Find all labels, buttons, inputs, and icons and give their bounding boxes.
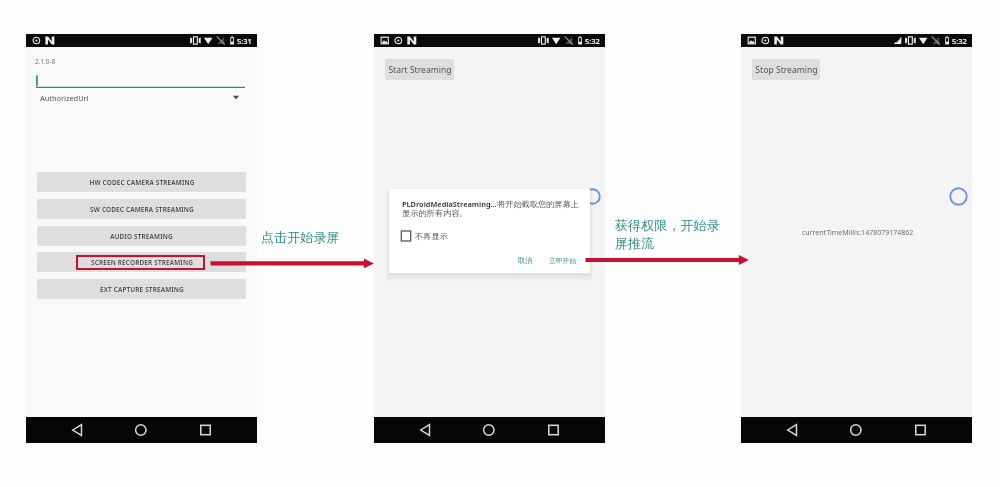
button[interactable]: Recent apps: [194, 417, 216, 443]
button[interactable]: Home: [130, 417, 152, 443]
staticText: HW CODEC CAMERA STREAMING: [89, 178, 195, 187]
staticText: SW CODEC CAMERA STREAMING: [90, 205, 194, 214]
button[interactable]: Home: [478, 417, 500, 443]
staticText: 5:32: [952, 36, 967, 46]
button[interactable]: 立即开始: [545, 254, 581, 267]
staticText: PLDroidMediaStreaming...: [402, 199, 497, 209]
staticText: 5:31: [237, 36, 252, 46]
button[interactable]: Back: [781, 417, 803, 443]
staticText: 显示的所有内容。: [402, 208, 468, 218]
button[interactable]: EXT CAPTURE STREAMING: [37, 279, 246, 299]
staticText: Start Streaming: [388, 64, 452, 76]
staticText: 获得权限，开始录 屏推流: [615, 217, 720, 251]
staticText: SCREEN RECORDER STREAMING: [91, 258, 193, 267]
staticText: Stop Streaming: [755, 64, 818, 76]
button[interactable]: AUDIO STREAMING: [37, 226, 246, 246]
button[interactable]: SW CODEC CAMERA STREAMING: [37, 199, 246, 219]
staticText: 立即开始: [549, 256, 577, 265]
button[interactable]: Start Streaming: [385, 59, 454, 80]
staticText: 5:32: [585, 36, 600, 46]
button[interactable]: Back: [66, 417, 88, 443]
staticText: AUDIO STREAMING: [110, 232, 173, 241]
staticText: EXT CAPTURE STREAMING: [100, 285, 184, 294]
button[interactable]: Recent apps: [909, 417, 931, 443]
button[interactable]: 不再显示: [400, 230, 448, 242]
button[interactable]: Home: [845, 417, 867, 443]
button[interactable]: HW CODEC CAMERA STREAMING: [37, 172, 246, 192]
button[interactable]: Recent apps: [542, 417, 564, 443]
staticText: 取消: [518, 256, 533, 265]
staticText: AuthorizedUrl: [40, 93, 89, 103]
button[interactable]: Back: [414, 417, 436, 443]
button[interactable]: 取消: [514, 254, 537, 267]
button[interactable]: AuthorizedUrl: [36, 90, 245, 106]
staticText: 2.1.0-8: [35, 57, 56, 66]
staticText: 点击开始录屏: [261, 229, 340, 246]
staticText: currentTimeMillis:1478079174862: [802, 228, 914, 238]
staticText: 不再显示: [415, 231, 448, 241]
button[interactable]: SCREEN RECORDER STREAMING: [37, 252, 246, 272]
staticText: 将开始截取您的屏幕上: [497, 199, 579, 209]
button[interactable]: Stop Streaming: [752, 59, 820, 80]
